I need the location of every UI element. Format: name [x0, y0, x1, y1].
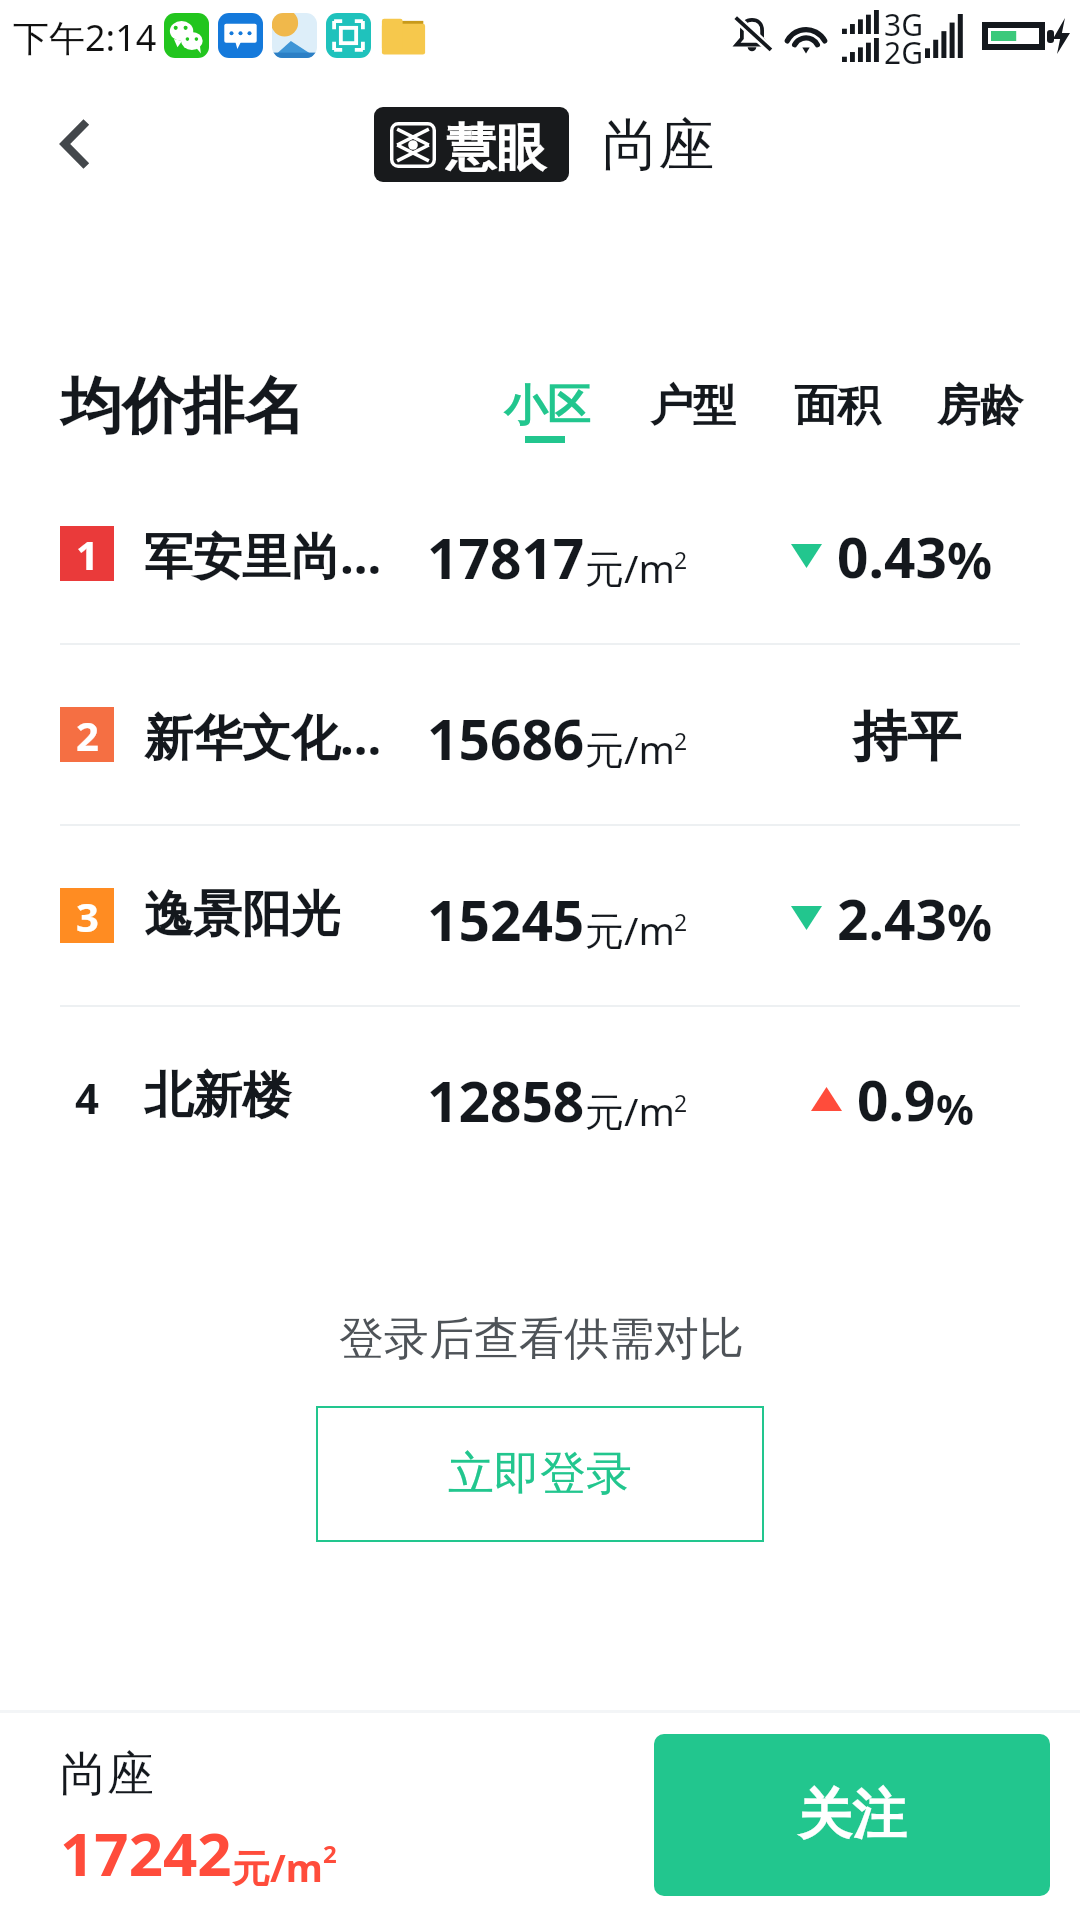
staticText: 房龄: [937, 379, 1023, 433]
button[interactable]: 立即登录: [316, 1406, 764, 1542]
button[interactable]: 2: [0, 649, 1080, 819]
staticText: 2: [674, 906, 688, 937]
button[interactable]: 1: [0, 468, 1080, 638]
staticText: 慧眼: [446, 117, 546, 180]
staticText: 0.43: [837, 519, 947, 594]
staticText: 尚座: [602, 110, 714, 181]
staticText: 元/m: [232, 1841, 323, 1893]
staticText: 2: [323, 1837, 337, 1870]
staticText: 17242: [60, 1812, 232, 1894]
staticText: 2: [674, 1087, 688, 1118]
staticText: 下午2:14: [13, 13, 157, 62]
staticText: 元/m: [585, 722, 675, 775]
staticText: 17817: [427, 520, 585, 595]
staticText: 军安里尚...: [144, 522, 382, 589]
staticText: 2: [674, 544, 688, 575]
staticText: 2: [76, 708, 99, 762]
staticText: %: [947, 888, 993, 956]
staticText: 小区: [504, 379, 590, 433]
staticText: 12858: [427, 1063, 585, 1138]
staticText: 0.9: [857, 1062, 936, 1137]
staticText: 户型: [650, 379, 736, 433]
staticText: 面积: [794, 379, 880, 433]
staticText: 2.43: [837, 881, 947, 956]
staticText: 元/m: [585, 541, 675, 594]
staticText: 持平: [853, 703, 961, 771]
button[interactable]: 小区: [490, 374, 602, 450]
button[interactable]: 面积: [780, 374, 892, 450]
button[interactable]: 3: [0, 830, 1080, 1000]
staticText: 均价排名: [61, 368, 305, 445]
staticText: 15686: [427, 701, 585, 776]
staticText: 新华文化...: [144, 703, 382, 770]
staticText: %: [936, 1080, 974, 1137]
staticText: 立即登录: [448, 1445, 632, 1503]
staticText: 3G: [884, 4, 923, 45]
button[interactable]: 关注: [654, 1734, 1050, 1896]
staticText: 1: [76, 527, 99, 581]
staticText: 3: [76, 889, 99, 943]
staticText: 4: [75, 1069, 100, 1124]
staticText: 逸景阳光: [144, 884, 340, 946]
staticText: 关注: [798, 1781, 906, 1849]
staticText: 15245: [427, 882, 585, 957]
button[interactable]: 户型: [636, 374, 748, 450]
button[interactable]: 房龄: [923, 374, 1035, 450]
staticText: 元/m: [585, 1084, 675, 1137]
button[interactable]: 4: [0, 1011, 1080, 1181]
button[interactable]: Back: [24, 106, 100, 182]
staticText: %: [947, 526, 993, 594]
staticText: 2: [674, 725, 688, 756]
staticText: 北新楼: [144, 1065, 291, 1127]
staticText: 尚座: [60, 1745, 154, 1804]
staticText: 元/m: [585, 903, 675, 956]
staticText: 2G: [884, 32, 923, 73]
staticText: 登录后查看供需对比: [339, 1311, 744, 1368]
